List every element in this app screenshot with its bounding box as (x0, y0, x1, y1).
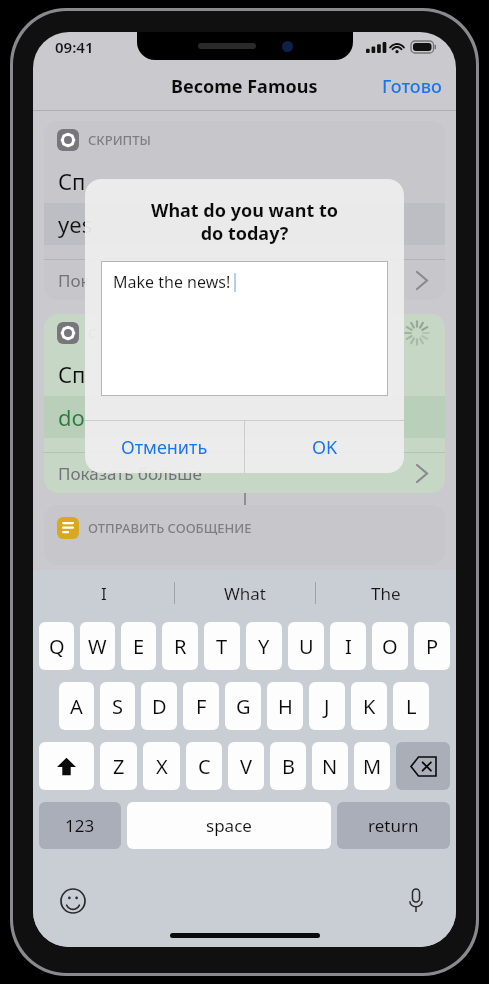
staticText: Показать больше (58, 462, 202, 485)
button[interactable]: G (225, 682, 261, 730)
button[interactable]: T (204, 622, 240, 670)
staticText: W (88, 633, 107, 660)
button[interactable]: U (288, 622, 324, 670)
staticText: I (101, 582, 107, 605)
staticText: G (236, 693, 251, 720)
staticText: B (282, 753, 295, 780)
staticText: V (240, 753, 252, 780)
staticText: yes (58, 209, 93, 239)
button[interactable]: Emoji (55, 883, 91, 919)
button[interactable]: A (59, 682, 94, 730)
button[interactable]: space (127, 802, 331, 849)
staticText: M (363, 753, 382, 780)
staticText: A (70, 693, 83, 720)
button[interactable]: J (309, 682, 345, 730)
staticText: S (112, 693, 123, 720)
staticText: F (196, 693, 207, 720)
staticText: The (371, 582, 401, 605)
button[interactable]: O (372, 622, 408, 670)
button[interactable]: I (330, 622, 366, 670)
staticText: do (58, 402, 85, 432)
button[interactable]: L (393, 682, 429, 730)
button[interactable]: ОТПРАВИТЬ СООБЩЕНИЕ (44, 505, 445, 565)
staticText: P (426, 633, 439, 660)
staticText: What do you want to do today? (99, 198, 390, 245)
staticText: OK (312, 435, 338, 460)
button[interactable]: Готово (368, 66, 456, 107)
button[interactable]: X (143, 742, 180, 790)
button[interactable]: Shift (39, 742, 94, 790)
staticText: What (224, 582, 266, 605)
button[interactable]: С (44, 314, 445, 493)
staticText: Z (113, 753, 125, 780)
button[interactable]: What (175, 570, 315, 616)
staticText: Become Famous (171, 74, 318, 99)
staticText: space (206, 814, 252, 837)
button[interactable]: Пок (44, 260, 445, 300)
button[interactable]: Z (100, 742, 137, 790)
button[interactable]: C (186, 742, 222, 790)
staticText: 123 (65, 814, 95, 837)
staticText: ОТПРАВИТЬ СООБЩЕНИЕ (88, 519, 252, 537)
staticText: N (322, 753, 338, 780)
staticText: C (198, 753, 211, 780)
button[interactable]: M (354, 742, 390, 790)
button[interactable]: R (162, 622, 198, 670)
staticText: K (363, 693, 376, 720)
staticText: Q (49, 633, 65, 660)
button[interactable]: 123 (39, 802, 121, 849)
staticText: E (133, 633, 145, 660)
staticText: I (345, 633, 352, 660)
staticText: R (174, 633, 187, 660)
button[interactable]: B (270, 742, 306, 790)
staticText: Y (258, 633, 270, 660)
staticText: J (324, 693, 330, 720)
button[interactable]: H (267, 682, 303, 730)
button[interactable]: OK (245, 421, 404, 473)
staticText: H (278, 693, 293, 720)
button[interactable]: K (351, 682, 387, 730)
staticText: Сп (58, 166, 86, 196)
staticText: return (368, 814, 419, 837)
button[interactable]: СКРИПТЫ (44, 121, 445, 300)
button[interactable]: F (183, 682, 219, 730)
button[interactable]: Backspace (396, 742, 450, 790)
button[interactable]: Q (39, 622, 74, 670)
button[interactable]: V (228, 742, 264, 790)
button[interactable]: Make the news! (102, 262, 387, 395)
staticText: СКРИПТЫ (88, 131, 151, 149)
button[interactable]: Y (246, 622, 282, 670)
staticText: Make the news! (113, 271, 231, 293)
staticText: 09:41 (55, 37, 94, 57)
button[interactable]: P (414, 622, 450, 670)
button[interactable]: S (100, 682, 135, 730)
button[interactable]: E (121, 622, 156, 670)
staticText: U (299, 633, 314, 660)
staticText: O (382, 633, 398, 660)
staticText: L (406, 693, 417, 720)
button[interactable]: N (312, 742, 348, 790)
button[interactable]: Отменить (85, 421, 244, 473)
button[interactable]: W (80, 622, 115, 670)
staticText: Отменить (121, 435, 208, 460)
button[interactable]: Dictation (398, 883, 434, 919)
staticText: D (152, 693, 167, 720)
staticText: T (216, 633, 228, 660)
button[interactable]: I (33, 570, 174, 616)
button[interactable]: D (141, 682, 177, 730)
button[interactable]: return (337, 802, 450, 849)
staticText: Готово (382, 74, 442, 99)
staticText: Сп (58, 359, 86, 389)
staticText: Пок (58, 269, 90, 292)
button[interactable]: The (316, 570, 456, 616)
staticText: X (156, 753, 168, 780)
button[interactable]: Показать больше (44, 453, 445, 493)
